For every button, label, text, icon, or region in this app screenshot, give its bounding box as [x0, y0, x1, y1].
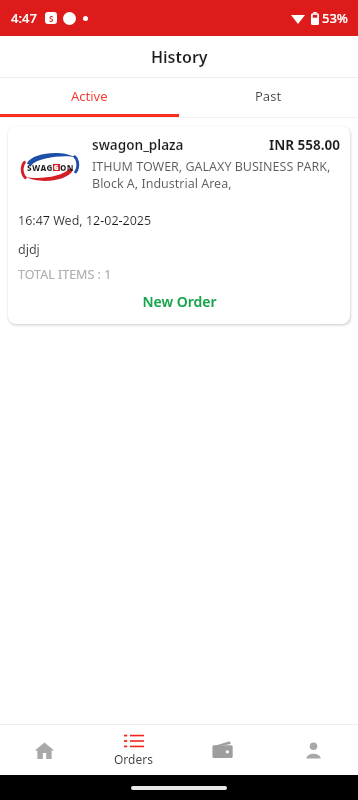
button[interactable]: Home: [0, 725, 89, 775]
staticText: Active: [71, 87, 108, 105]
button[interactable]: SWAG: [8, 126, 350, 324]
button[interactable]: Past: [179, 78, 358, 114]
staticText: New Order: [142, 292, 217, 311]
button[interactable]: Wallet: [178, 725, 268, 775]
staticText: Orders: [114, 751, 153, 767]
staticText: ON: [60, 162, 74, 173]
staticText: djdj: [18, 241, 40, 258]
staticText: 53%: [322, 9, 348, 27]
button[interactable]: New Order: [18, 289, 340, 314]
staticText: 4:47: [11, 9, 37, 27]
button[interactable]: Active: [0, 78, 179, 114]
staticText: INR 558.00: [269, 136, 340, 154]
staticText: G: [54, 164, 59, 171]
staticText: ITHUM TOWER, GALAXY BUSINESS PARK, Block…: [92, 158, 340, 191]
button[interactable]: Profile: [268, 725, 358, 775]
staticText: SWAG: [27, 162, 53, 173]
staticText: S: [49, 13, 54, 24]
button[interactable]: Orders: [89, 725, 178, 775]
staticText: swagon_plaza: [92, 136, 269, 154]
staticText: History: [151, 46, 208, 68]
staticText: 16:47 Wed, 12-02-2025: [18, 212, 152, 229]
staticText: Past: [255, 87, 282, 105]
staticText: TOTAL ITEMS : 1: [18, 266, 112, 283]
